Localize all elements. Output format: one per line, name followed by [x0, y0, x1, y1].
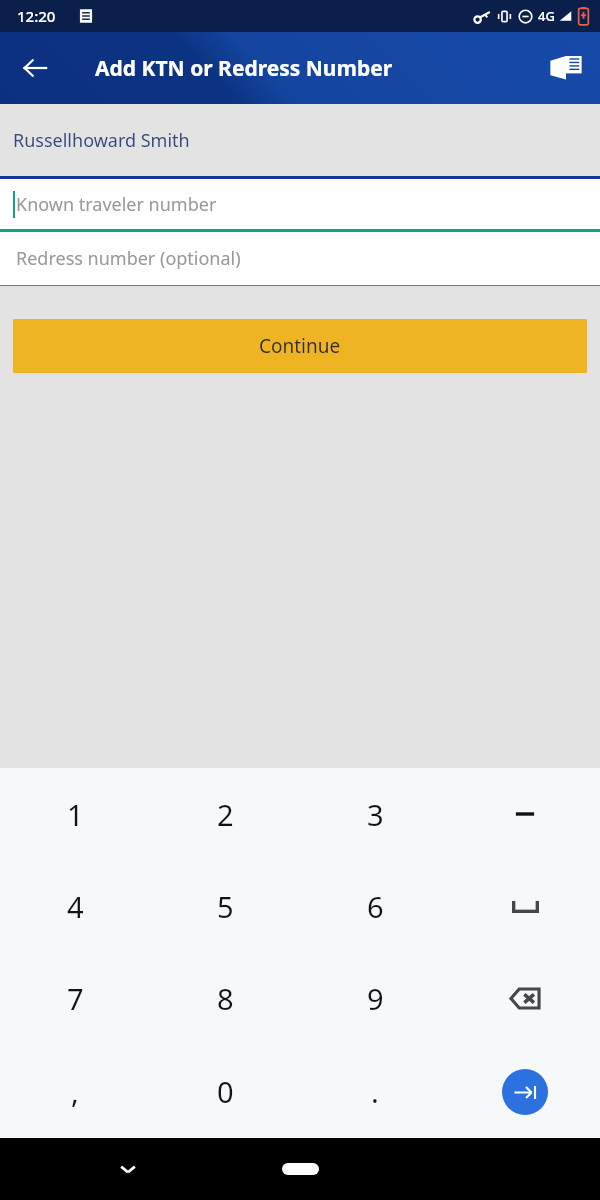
button[interactable]: 4 — [0, 860, 150, 952]
staticText: 12:20 — [17, 6, 56, 26]
staticText: Known traveler number — [16, 192, 217, 217]
staticText: 2 — [217, 795, 234, 834]
button[interactable]: , — [0, 1045, 150, 1138]
button[interactable]: Home — [268, 1147, 332, 1191]
button[interactable]: Passport — [540, 42, 592, 94]
staticText: 6 — [367, 887, 384, 926]
button[interactable]: Known traveler number — [0, 179, 600, 229]
button[interactable]: 7 — [0, 952, 150, 1045]
staticText: Add KTN or Redress Number — [95, 54, 393, 83]
staticText: 9 — [367, 979, 384, 1018]
button[interactable]: Space — [450, 860, 600, 952]
button[interactable]: Continue — [13, 319, 587, 373]
button[interactable]: 8 — [150, 952, 300, 1045]
button[interactable]: 5 — [150, 860, 300, 952]
button[interactable]: 2 — [150, 768, 300, 860]
button[interactable]: Hide keyboard — [106, 1147, 150, 1191]
staticText: , — [71, 1072, 79, 1111]
button[interactable]: 9 — [300, 952, 450, 1045]
staticText: 1 — [67, 795, 84, 834]
staticText: Redress number (optional) — [16, 246, 241, 271]
staticText: 4 — [67, 887, 84, 926]
staticText: 3 — [367, 795, 384, 834]
button[interactable]: Minus — [450, 768, 600, 860]
button[interactable]: 0 — [150, 1045, 300, 1138]
button[interactable]: 1 — [0, 768, 150, 860]
staticText: 4G — [538, 7, 555, 25]
button[interactable]: 6 — [300, 860, 450, 952]
staticText: Russellhoward Smith — [13, 128, 190, 153]
button[interactable]: Backspace — [450, 952, 600, 1045]
staticText: 7 — [67, 979, 84, 1018]
button[interactable]: Back — [11, 44, 59, 92]
staticText: . — [371, 1072, 379, 1111]
staticText: Continue — [259, 333, 341, 359]
button[interactable]: 3 — [300, 768, 450, 860]
staticText: 0 — [217, 1072, 234, 1111]
staticText: 5 — [217, 887, 234, 926]
button[interactable]: . — [300, 1045, 450, 1138]
button[interactable]: Redress number (optional) — [0, 232, 600, 285]
button[interactable]: Enter — [450, 1045, 600, 1138]
staticText: 8 — [217, 979, 234, 1018]
